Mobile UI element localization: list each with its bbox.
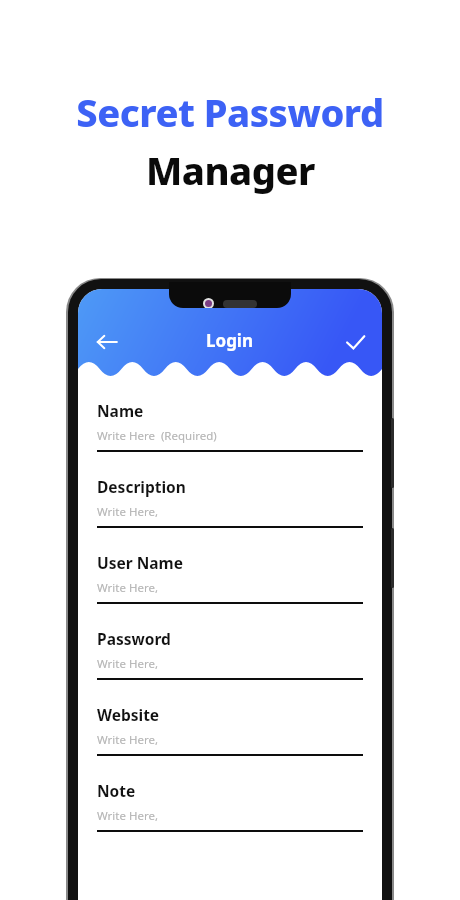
staticText: Write Here, [97, 808, 159, 824]
staticText: Login [206, 329, 254, 352]
staticText: Write Here, [97, 580, 159, 596]
button[interactable]: Name [97, 390, 363, 466]
staticText: Manager [146, 144, 315, 196]
staticText: Note [97, 780, 136, 801]
staticText: Secret Password [76, 86, 384, 138]
button[interactable]: Password [97, 618, 363, 694]
button[interactable]: User Name [97, 542, 363, 618]
staticText: Website [97, 704, 160, 725]
staticText: Write Here, [97, 656, 159, 672]
staticText: Write Here, [97, 732, 159, 748]
button[interactable]: Save [338, 325, 372, 359]
button[interactable]: Back [90, 325, 124, 359]
button[interactable]: Website [97, 694, 363, 770]
staticText: Write Here (Required) [97, 428, 217, 444]
staticText: Password [97, 628, 171, 649]
staticText: Description [97, 476, 186, 497]
button[interactable]: Description [97, 466, 363, 542]
button[interactable]: Note [97, 770, 363, 846]
staticText: Write Here, [97, 504, 159, 520]
staticText: User Name [97, 552, 183, 573]
staticText: Name [97, 400, 144, 421]
